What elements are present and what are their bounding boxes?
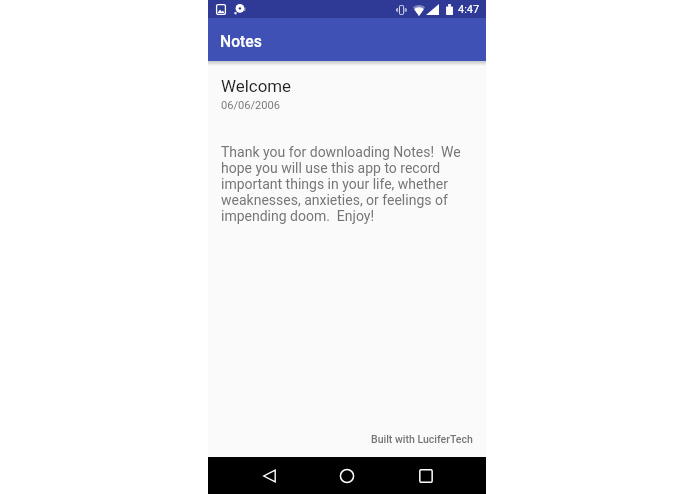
- staticText: Built with LuciferTech: [371, 433, 473, 445]
- staticText: Notes: [220, 32, 262, 50]
- staticText: Thank you for downloading Notes! We hope…: [221, 144, 475, 224]
- staticText: 4:47: [458, 3, 480, 16]
- staticText: 06/06/2006: [221, 99, 281, 112]
- button[interactable]: Recents: [408, 458, 444, 494]
- button[interactable]: Back: [251, 458, 287, 494]
- button[interactable]: Home: [329, 458, 365, 494]
- staticText: Welcome: [221, 76, 292, 96]
